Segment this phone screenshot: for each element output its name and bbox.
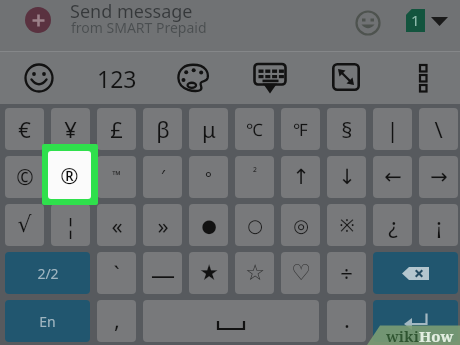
staticText: ` [113,258,120,288]
button[interactable]: Add attachment [25,7,51,33]
staticText: μ [202,114,216,144]
button[interactable]: ● [189,204,228,246]
staticText: ¦ [64,210,77,240]
staticText: ™ [112,167,121,182]
button[interactable]: ↑ [281,156,320,198]
button[interactable]: ℃ [235,108,274,150]
staticText: ÷ [340,258,353,288]
staticText: ¥ [64,114,77,144]
button[interactable]: β [143,108,182,150]
button[interactable]: ★ [189,252,228,294]
button[interactable]: ← [373,156,412,198]
button[interactable]: Hide keyboard [252,62,289,96]
button[interactable]: ↓ [327,156,366,198]
button[interactable]: ☆ [235,252,274,294]
staticText: ← [384,165,402,189]
button[interactable]: ÷ [327,252,366,294]
button[interactable]: \ [419,108,458,150]
staticText: « [111,210,123,240]
staticText: ℉ [293,118,308,141]
button[interactable]: ¦ [51,204,90,246]
button[interactable]: Change SIM [431,17,448,26]
staticText: √ [17,212,32,238]
staticText: ° [205,167,212,189]
button[interactable]: © [5,156,44,198]
staticText: ● [201,215,217,236]
staticText: © [16,163,34,192]
button[interactable]: § [327,108,366,150]
button[interactable]: ¿ [373,204,412,246]
staticText: | [386,114,399,144]
staticText: ※ [339,213,355,238]
button[interactable]: . [327,300,366,342]
button[interactable]: ¥ [51,108,90,150]
staticText: β [156,114,170,144]
staticText: \ [434,114,443,144]
button[interactable]: £ [97,108,136,150]
staticText: ↑ [292,165,310,189]
button[interactable]: Backspace [373,252,458,294]
staticText: → [430,165,448,189]
button[interactable]: ™ [97,156,136,198]
button[interactable]: ² [235,156,274,198]
button[interactable]: Themes [176,61,210,95]
button[interactable]: ` [97,252,136,294]
button[interactable]: Space [143,300,319,342]
staticText: 2/2 [37,264,59,283]
staticText: ¡ [436,210,442,240]
staticText: ☆ [245,260,265,286]
button[interactable]: ® [48,151,91,199]
button[interactable]: ◎ [281,204,320,246]
staticText: ¿ [388,210,398,240]
staticText: Send message [70,0,193,24]
staticText: £ [110,114,123,144]
staticText: ² [253,165,257,180]
button[interactable]: ※ [327,204,366,246]
staticText: ′ [161,164,165,187]
staticText: . [344,304,350,334]
button[interactable]: ¡ [419,204,458,246]
button[interactable]: ♡ [281,252,320,294]
staticText: ↓ [338,165,356,189]
staticText: ♡ [291,260,311,286]
button[interactable]: ° [189,156,228,198]
staticText: ® [60,160,79,190]
staticText: 123 [97,63,137,94]
button[interactable]: Resize keyboard [332,63,360,91]
button[interactable]: SIM 1 [406,9,425,32]
staticText: ◎ [293,215,309,236]
button[interactable]: » [143,204,182,246]
staticText: En [39,312,56,331]
staticText: ○ [247,215,263,236]
button[interactable]: → [419,156,458,198]
button[interactable]: — [143,252,182,294]
staticText: ★ [199,260,219,286]
staticText: § [341,114,353,144]
button[interactable]: √ [5,204,44,246]
button[interactable]: | [373,108,412,150]
button[interactable]: More options [414,62,432,94]
staticText: 1 [411,10,420,30]
button[interactable]: Enter [373,300,458,342]
button[interactable]: μ [189,108,228,150]
button[interactable]: ′ [143,156,182,198]
button[interactable]: Emoji [22,61,56,95]
staticText: wiki [386,326,419,345]
button[interactable]: , [97,300,136,342]
staticText: € [18,114,31,144]
staticText: ℃ [246,118,263,141]
button[interactable]: Emoji [353,8,383,38]
button[interactable]: ○ [235,204,274,246]
staticText: from SMART Prepaid [71,18,207,37]
staticText: How [419,326,454,345]
button[interactable]: € [5,108,44,150]
button[interactable]: Language English [5,300,90,342]
staticText: , [114,304,120,334]
staticText: — [151,257,175,290]
staticText: » [157,210,169,240]
button[interactable]: Page 2 of 2 [5,252,90,294]
button[interactable]: ℉ [281,108,320,150]
button[interactable]: « [97,204,136,246]
button[interactable]: 123 [93,62,141,94]
